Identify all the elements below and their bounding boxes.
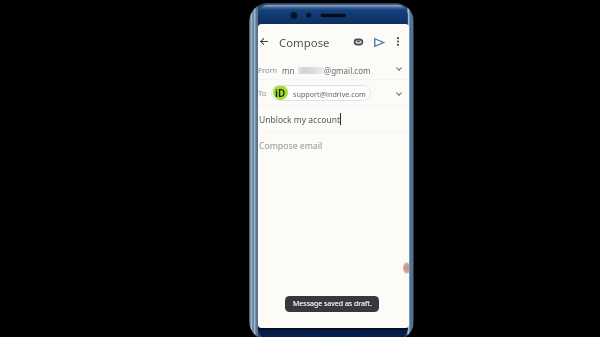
button[interactable]: Back (258, 33, 272, 49)
staticText: Unblock my account (259, 114, 340, 126)
button[interactable]: Attach file (350, 34, 366, 50)
button[interactable]: Compose email (258, 132, 409, 327)
staticText: Message saved as draft. (293, 299, 372, 309)
staticText: @gmail.com (324, 65, 371, 76)
button[interactable]: More options (391, 34, 405, 48)
staticText: To (258, 88, 267, 99)
staticText: iD (275, 86, 286, 100)
staticText: Compose (279, 35, 330, 51)
button[interactable]: Send (371, 34, 387, 50)
staticText: mn (282, 65, 295, 76)
button[interactable]: Unblock my account (258, 106, 409, 132)
staticText: From (258, 65, 278, 76)
staticText: support@indrive.com (293, 89, 366, 99)
staticText: Compose email (259, 140, 323, 152)
button[interactable]: From (258, 56, 409, 79)
button[interactable]: To (258, 79, 409, 105)
